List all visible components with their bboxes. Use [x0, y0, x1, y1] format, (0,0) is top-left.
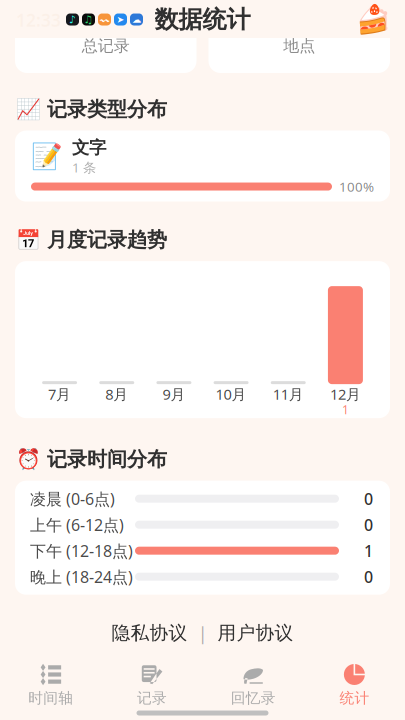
staticText: 记录 [137, 689, 167, 707]
staticText: 10月 [216, 384, 247, 404]
staticText: 记录类型分布 [47, 97, 167, 122]
staticText: 文字 [72, 137, 106, 158]
staticText: ♪ [69, 13, 76, 25]
button[interactable]: 统计 [304, 664, 405, 707]
button[interactable]: Profile [356, 2, 405, 35]
staticText: 隐私协议 [111, 622, 187, 644]
staticText: 回忆录 [231, 689, 276, 707]
staticText: | [187, 621, 217, 645]
staticText: 1 条 [72, 158, 96, 176]
staticText: 0 [364, 488, 373, 509]
staticText: 0 [364, 566, 373, 587]
staticText: 时间轴 [28, 689, 73, 707]
button[interactable]: 0 [208, 38, 390, 74]
staticText: 12:33 [16, 8, 61, 31]
button[interactable]: 回忆录 [202, 664, 304, 707]
staticText: ⏰ [16, 448, 41, 471]
staticText: 11月 [273, 384, 304, 404]
button[interactable]: 用户协议 [217, 622, 293, 644]
staticText: 上午 (6-12点) [30, 514, 124, 535]
staticText: 0 [364, 514, 373, 535]
staticText: 12月 [330, 384, 361, 404]
staticText: 月度记录趋势 [47, 228, 167, 252]
staticText: ☁ [132, 14, 141, 25]
staticText: 下午 (12-18点) [30, 540, 133, 561]
staticText: 用户协议 [217, 622, 293, 644]
button[interactable]: 0 [15, 38, 196, 74]
button[interactable]: 时间轴 [0, 664, 101, 707]
staticText: 记录时间分布 [47, 447, 167, 472]
staticText: 8月 [105, 384, 128, 404]
staticText: 凌晨 (0-6点) [30, 488, 115, 509]
staticText: 0 [98, 6, 114, 44]
staticText: 9月 [162, 384, 185, 404]
staticText: 〰 [100, 13, 109, 26]
staticText: 晚上 (18-24点) [30, 566, 133, 587]
staticText: 📝 [31, 142, 63, 171]
staticText: 100% [339, 178, 374, 195]
staticText: 0 [291, 6, 307, 44]
staticText: 📈 [16, 98, 41, 121]
staticText: 7月 [48, 384, 71, 404]
staticText: 📅 [16, 228, 41, 251]
staticText: 数据统计 [154, 5, 250, 34]
staticText: 统计 [339, 689, 369, 707]
staticText: 1 [342, 402, 349, 418]
button[interactable]: 记录 [101, 664, 202, 707]
staticText: 1 [364, 540, 373, 561]
button[interactable]: 隐私协议 [111, 622, 187, 644]
staticText: 地点 [283, 36, 315, 56]
staticText: 🍰 [356, 3, 391, 35]
staticText: 总记录 [82, 36, 130, 56]
staticText: ➤ [116, 14, 124, 25]
staticText: ♫ [83, 13, 93, 25]
